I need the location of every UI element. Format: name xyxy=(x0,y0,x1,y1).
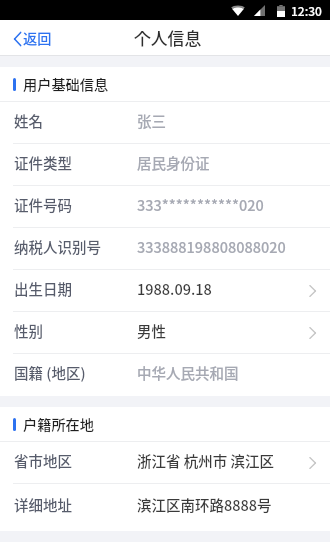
staticText: 国籍 (地区) xyxy=(14,362,86,383)
staticText: 333888198808088020 xyxy=(137,236,286,257)
staticText: 详细地址 xyxy=(14,494,72,515)
staticText: 中华人民共和国 xyxy=(137,362,239,383)
button[interactable]: 省市地区 xyxy=(0,442,330,484)
staticText: 333***********020 xyxy=(137,194,264,215)
staticText: 姓名 xyxy=(14,110,43,131)
button[interactable]: 详细地址 xyxy=(0,484,330,531)
staticText: 返回 xyxy=(23,28,52,49)
staticText: 证件号码 xyxy=(14,194,72,215)
staticText: 出生日期 xyxy=(14,278,72,299)
staticText: 男性 xyxy=(137,320,166,341)
button[interactable]: 姓名 xyxy=(0,102,330,144)
staticText: 居民身份证 xyxy=(137,152,210,173)
staticText: 纳税人识别号 xyxy=(14,236,101,257)
staticText: 证件类型 xyxy=(14,152,72,173)
button[interactable]: 纳税人识别号 xyxy=(0,228,330,270)
staticText: 省市地区 xyxy=(14,450,72,471)
staticText: 个人信息 xyxy=(134,26,202,50)
button[interactable]: 国籍 (地区) xyxy=(0,354,330,396)
button[interactable]: 证件号码 xyxy=(0,186,330,228)
staticText: 用户基础信息 xyxy=(23,74,109,95)
staticText: 浙江省 杭州市 滨江区 xyxy=(137,450,275,471)
staticText: 性别 xyxy=(14,320,43,341)
staticText: 张三 xyxy=(137,110,166,131)
button[interactable]: 出生日期 xyxy=(0,270,330,312)
staticText: 1988.09.18 xyxy=(137,278,212,299)
staticText: 滨江区南环路8888号 xyxy=(137,494,272,515)
staticText: 户籍所在地 xyxy=(23,414,94,435)
staticText: 12:30 xyxy=(291,2,322,19)
button[interactable]: 证件类型 xyxy=(0,144,330,186)
button[interactable]: 返回 xyxy=(0,23,64,54)
button[interactable]: 性别 xyxy=(0,312,330,354)
